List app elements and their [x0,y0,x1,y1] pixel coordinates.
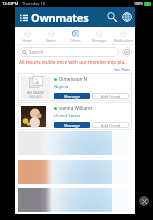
button[interactable]: Language [120,10,134,24]
staticText: Message [64,123,80,128]
staticText: 12:53PM [2,1,19,6]
staticText: Others [70,39,81,43]
staticText: Add Friend [101,123,121,128]
staticText: NO IMAGE [27,90,44,95]
button[interactable]: Message [54,93,90,99]
button[interactable]: Message [54,122,90,128]
staticText: Status [46,39,56,43]
staticText: Ownmates [31,10,89,25]
staticText: Search [29,49,44,55]
button[interactable]: Search [19,47,119,57]
staticText: Dimension N [59,76,87,82]
button[interactable]: Notifications [111,27,135,44]
button[interactable]: Status [39,27,63,44]
button[interactable]: Search [105,10,119,24]
staticText: Home [22,39,32,43]
staticText: Add Friend [101,94,121,99]
button[interactable]: Close [139,196,149,206]
staticText: Messages [92,39,107,43]
button[interactable]: Messages [87,27,111,44]
staticText: Notifications [114,39,133,43]
staticText: United States [54,113,81,119]
staticText: AVAILABLE [29,95,43,99]
staticText: sienna Williams [59,105,93,111]
staticText: Nigeria [54,84,69,90]
button[interactable] [18,160,132,184]
button[interactable]: NO IMAGE [18,73,132,101]
staticText: All results visible once with our member… [19,59,128,65]
staticText: Thursday 18 [22,1,46,6]
button[interactable]: Menu [17,11,30,24]
button[interactable] [18,188,132,212]
button[interactable]: sienna Williams [18,102,132,130]
button[interactable]: Others [63,27,87,44]
button[interactable]: Filter [122,47,132,57]
staticText: 100% [134,1,143,6]
button[interactable]: Add Friend [92,93,129,99]
button[interactable] [18,131,132,155]
button[interactable]: Home [15,27,39,44]
staticText: See Plans [114,67,131,72]
staticText: Message [64,94,80,99]
button[interactable]: Add Friend [92,122,129,128]
